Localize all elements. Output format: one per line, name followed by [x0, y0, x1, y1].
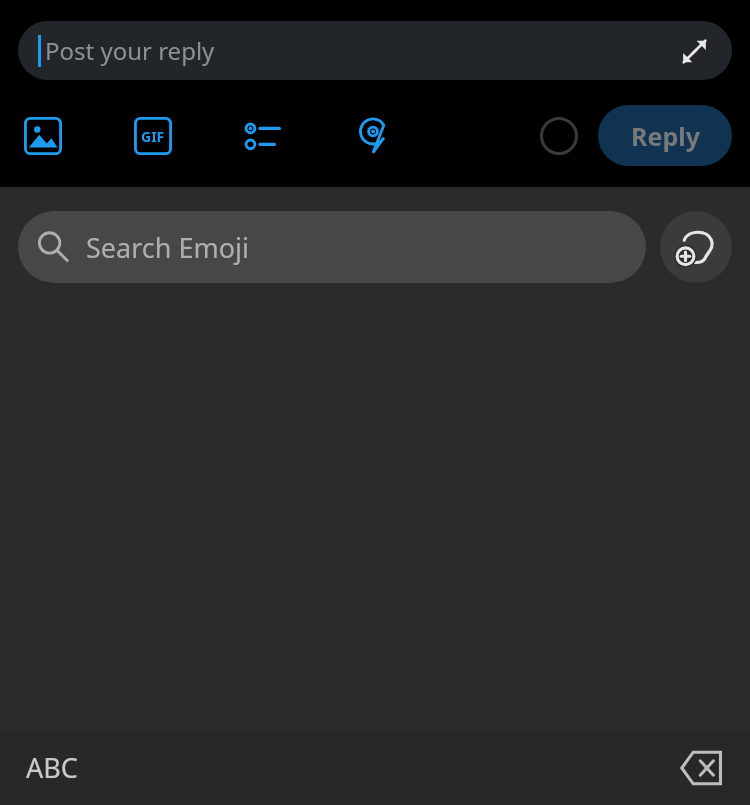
button[interactable]: Create sticker — [660, 211, 732, 283]
staticText: Post your reply — [45, 34, 215, 67]
button[interactable]: Add GIF — [120, 103, 186, 169]
button[interactable]: Post your reply — [18, 21, 732, 80]
button[interactable]: Search Emoji — [18, 211, 646, 283]
button[interactable]: Add location — [340, 103, 406, 169]
staticText: Search Emoji — [86, 229, 249, 266]
button[interactable]: Expand — [674, 31, 714, 71]
staticText: GIF — [141, 127, 165, 146]
button[interactable]: ABC — [8, 730, 96, 805]
staticText: ABC — [26, 749, 78, 786]
staticText: Reply — [631, 119, 700, 153]
button[interactable]: Character count — [530, 107, 588, 165]
button[interactable]: Backspace — [662, 730, 742, 805]
button[interactable]: Reply — [598, 105, 732, 166]
button[interactable]: Add poll — [230, 103, 296, 169]
button[interactable]: Add photo — [10, 103, 76, 169]
